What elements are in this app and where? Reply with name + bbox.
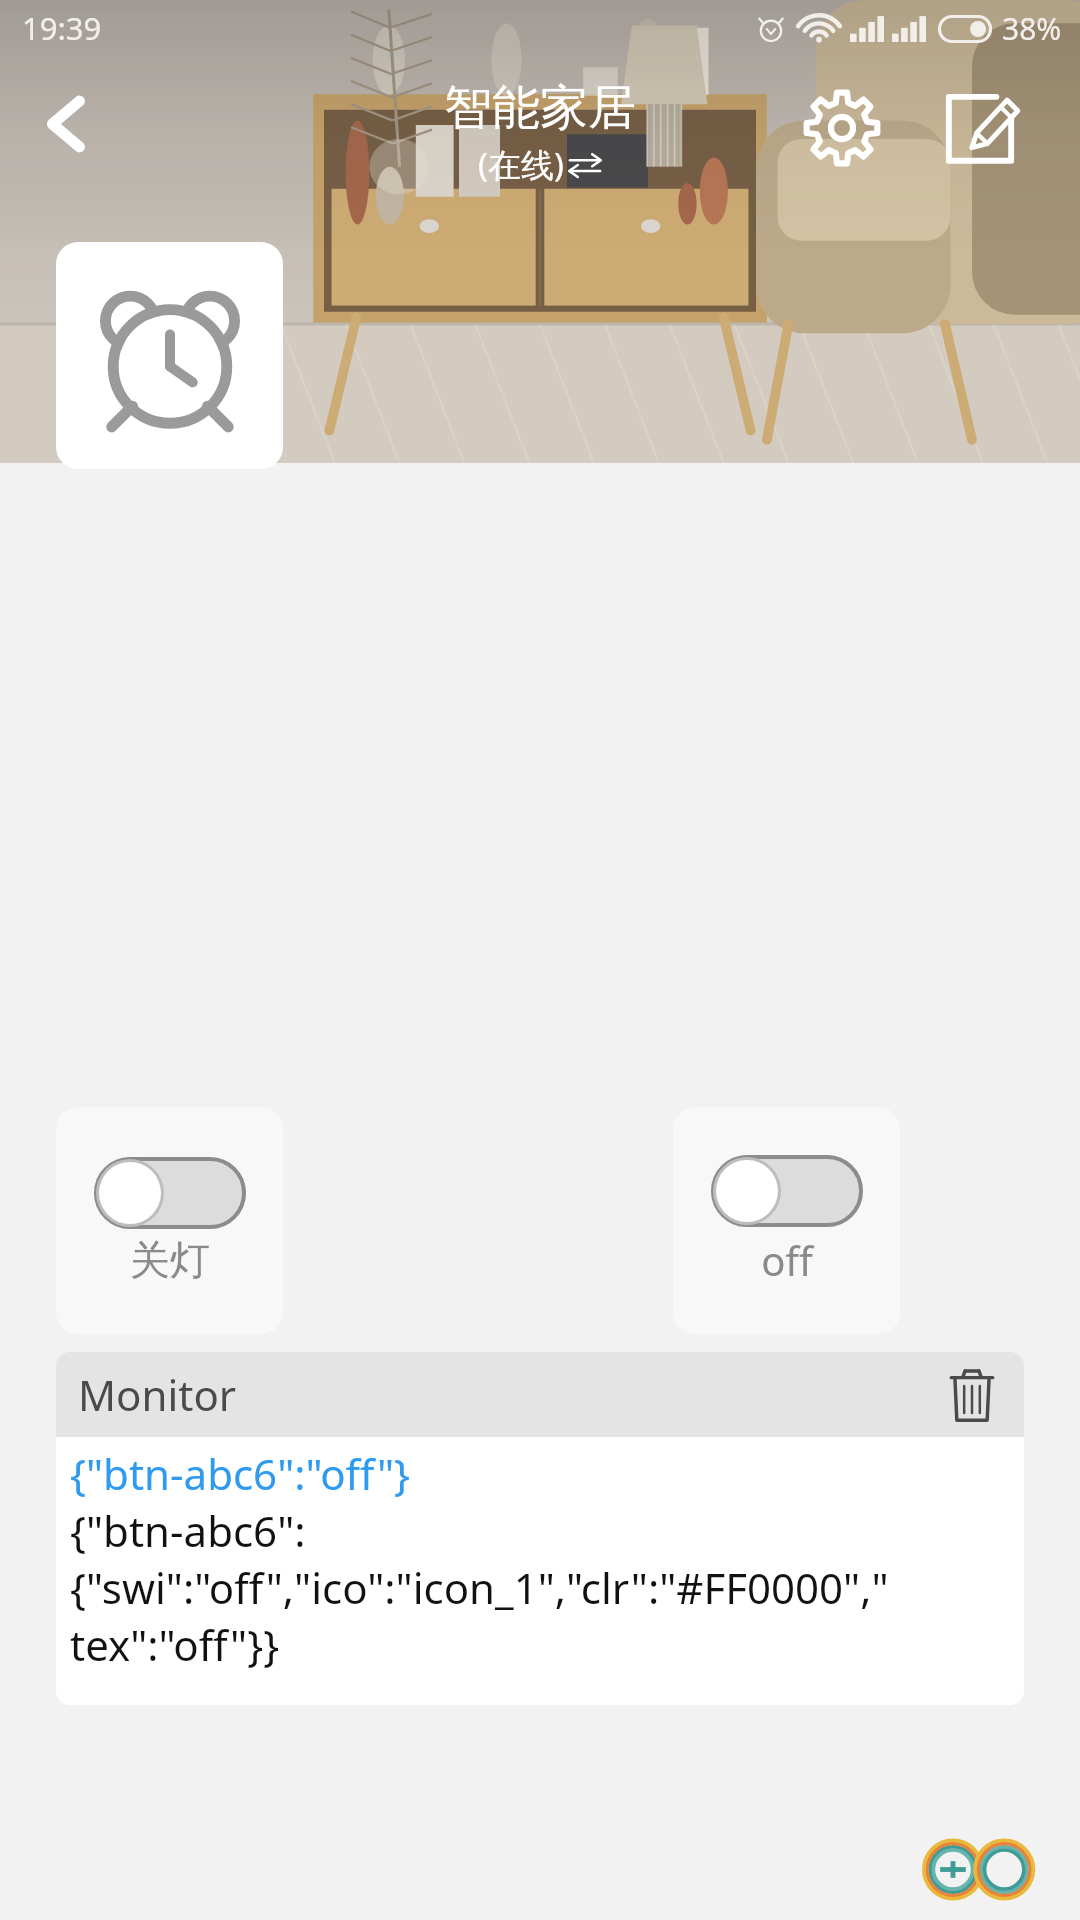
button[interactable]: Edit: [928, 76, 1032, 180]
staticText: off: [761, 1233, 813, 1287]
button[interactable]: off: [673, 1107, 900, 1334]
button[interactable]: Delete: [934, 1357, 1010, 1433]
button[interactable]: Alarm: [56, 242, 283, 469]
button[interactable]: Settings: [790, 76, 894, 180]
button[interactable]: 关灯: [56, 1107, 283, 1334]
button[interactable]: 智能家居: [444, 78, 636, 187]
staticText: 关灯: [130, 1235, 210, 1285]
button[interactable]: Back: [20, 76, 116, 172]
staticText: 19:39: [22, 7, 102, 49]
staticText: 38%: [1002, 8, 1062, 49]
staticText: {"btn-abc6":: [70, 1502, 306, 1559]
staticText: tex":"off"}}: [70, 1616, 280, 1673]
staticText: Monitor: [78, 1366, 237, 1423]
staticText: 智能家居: [444, 78, 636, 138]
staticText: (在线): [478, 142, 564, 187]
staticText: {"btn-abc6":"off"}: [70, 1445, 411, 1502]
staticText: {"swi":"off","ico":"icon_1","clr":"#FF00…: [70, 1559, 889, 1616]
